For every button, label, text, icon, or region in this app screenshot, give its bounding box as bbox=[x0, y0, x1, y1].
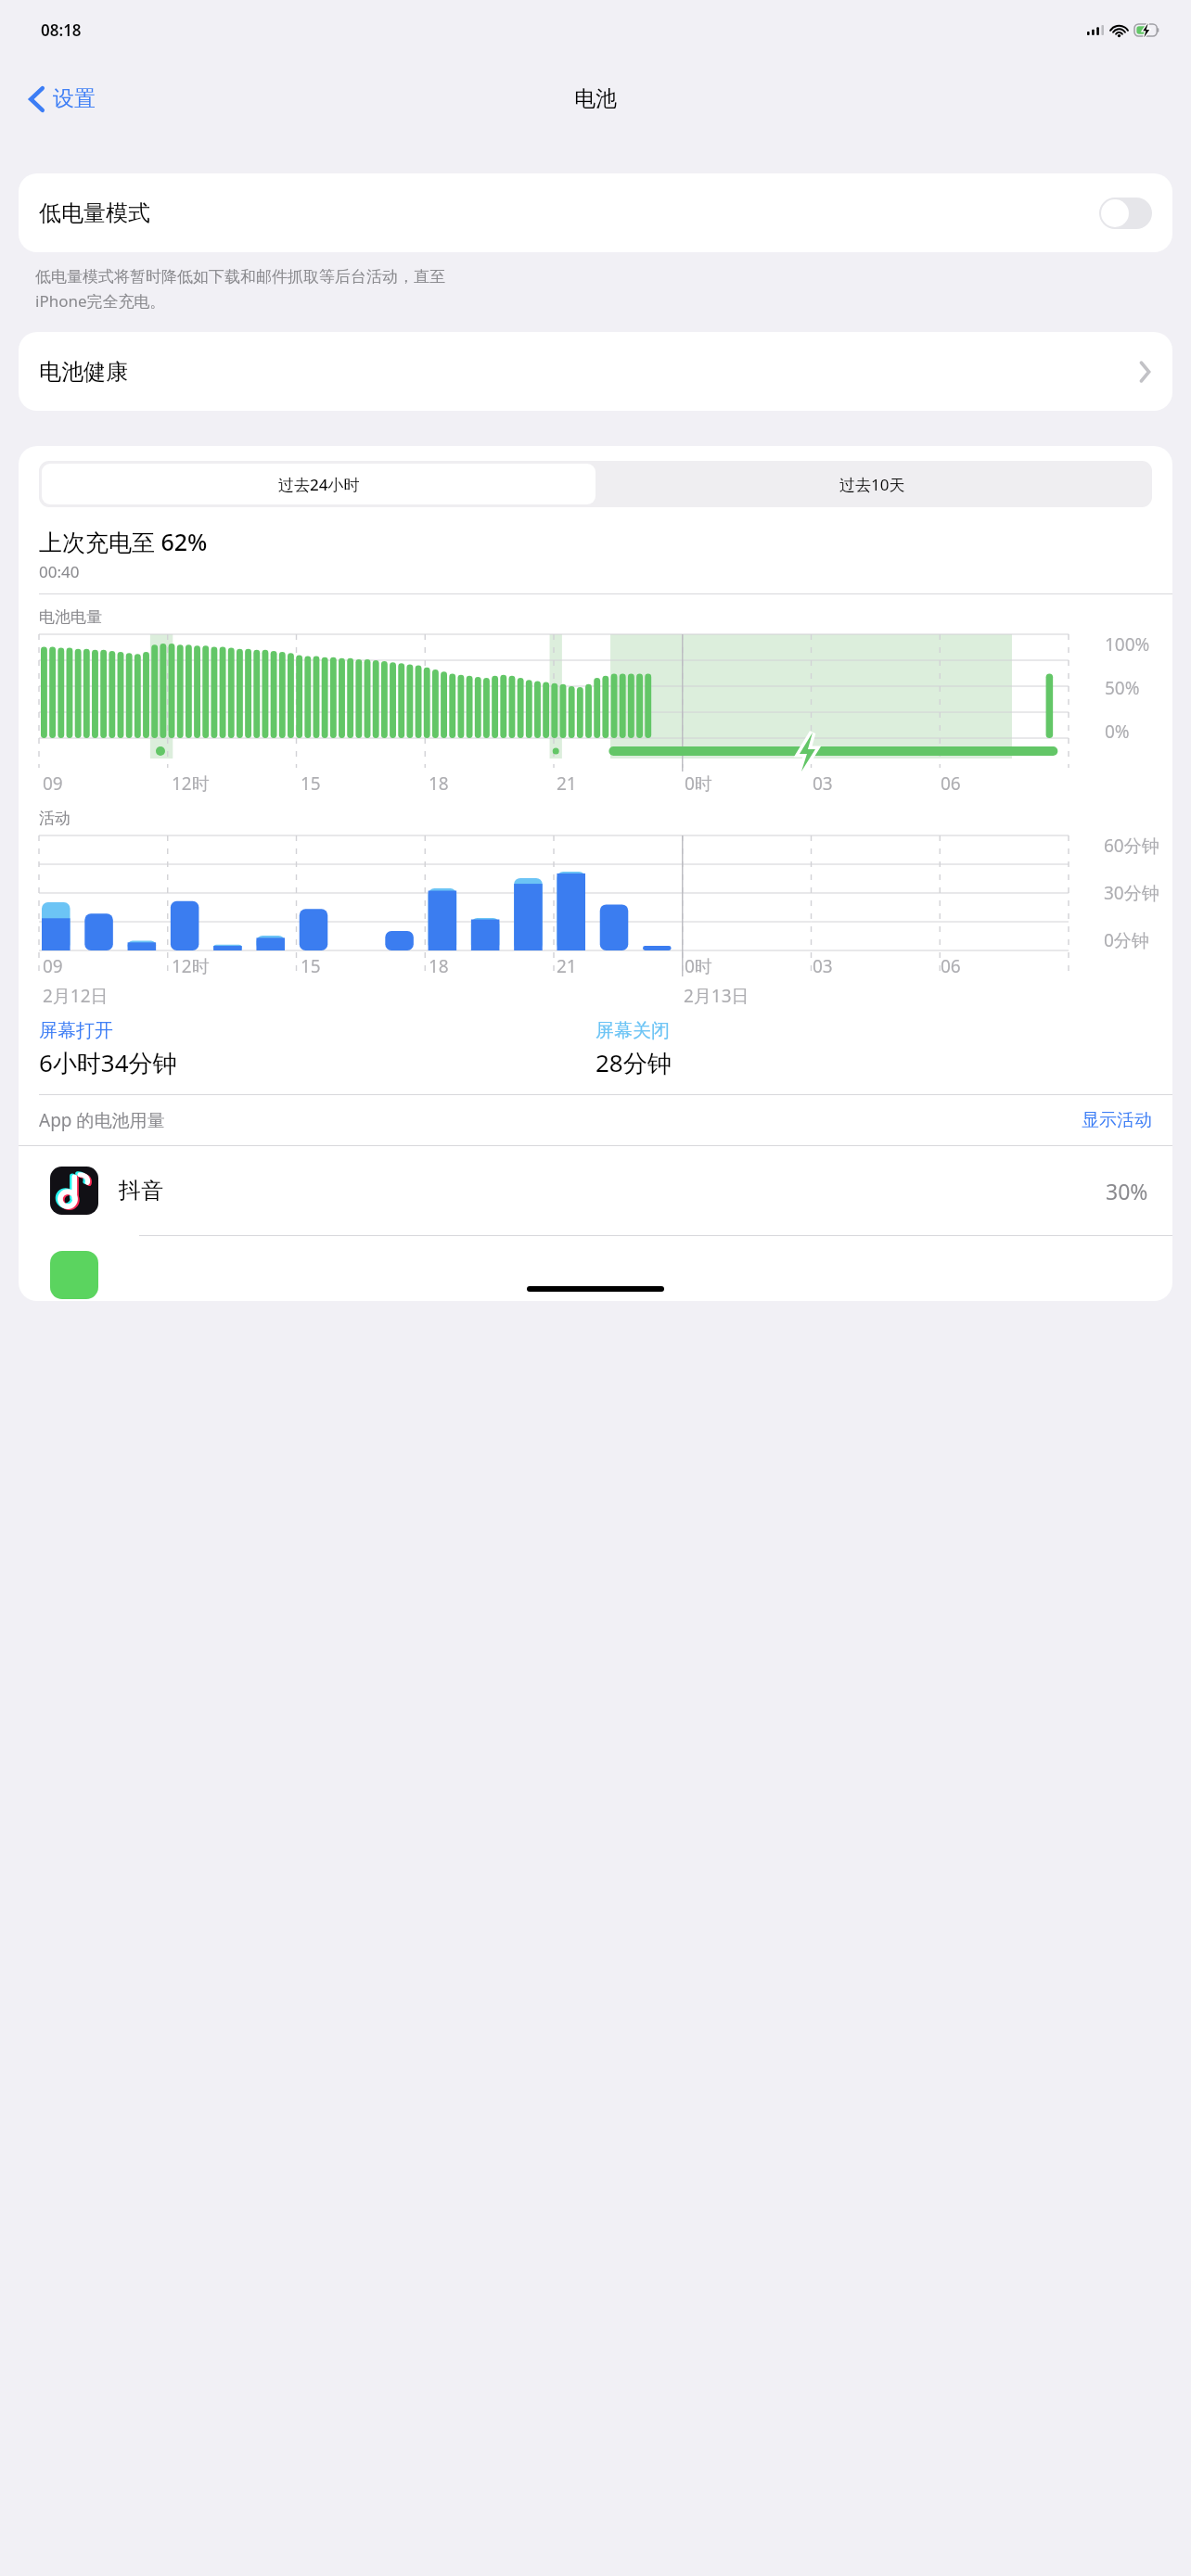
button[interactable]: 显示活动 bbox=[1082, 1109, 1152, 1131]
staticText: 09 bbox=[43, 772, 63, 796]
staticText: 15 bbox=[301, 772, 321, 796]
staticText: 低电量模式将暂时降低如下载和邮件抓取等后台活动，直至 iPhone完全充电。 bbox=[35, 267, 1172, 312]
staticText: 18 bbox=[429, 772, 449, 796]
staticText: 电池 bbox=[574, 85, 617, 112]
button[interactable]: 过去24小时 bbox=[42, 464, 595, 504]
button[interactable]: 电池健康 bbox=[19, 332, 1172, 411]
button[interactable]: 设置 bbox=[22, 80, 103, 118]
staticText: 屏幕关闭 bbox=[595, 1019, 670, 1042]
staticText: 50% bbox=[1105, 676, 1140, 700]
staticText: App 的电池用量 bbox=[39, 1108, 165, 1132]
button[interactable]: Low Power Mode toggle bbox=[1099, 198, 1152, 229]
staticText: 抖音 bbox=[119, 1177, 163, 1205]
staticText: 08:18 bbox=[41, 19, 82, 41]
staticText: 低电量模式 bbox=[39, 199, 150, 227]
staticText: 上次充电至 62% bbox=[39, 526, 208, 557]
staticText: 00:40 bbox=[39, 561, 80, 582]
staticText: 06 bbox=[941, 772, 961, 796]
staticText: 设置 bbox=[53, 85, 96, 112]
button[interactable]: 过去10天 bbox=[595, 464, 1149, 504]
staticText: 12时 bbox=[172, 954, 210, 978]
staticText: 03 bbox=[813, 772, 833, 796]
staticText: 21 bbox=[557, 954, 577, 978]
staticText: 0时 bbox=[685, 772, 712, 796]
button[interactable]: 低电量模式 bbox=[19, 173, 1172, 252]
staticText: 活动 bbox=[39, 809, 70, 828]
staticText: 09 bbox=[43, 954, 63, 978]
staticText: 0时 bbox=[685, 954, 712, 978]
staticText: 2月12日 bbox=[43, 984, 109, 1008]
staticText: 60分钟 bbox=[1104, 834, 1159, 858]
staticText: 过去24小时 bbox=[278, 474, 360, 495]
staticText: 2月13日 bbox=[684, 984, 749, 1008]
staticText: 15 bbox=[301, 954, 321, 978]
staticText: 电池健康 bbox=[39, 358, 128, 386]
staticText: 21 bbox=[557, 772, 577, 796]
staticText: 03 bbox=[813, 954, 833, 978]
button[interactable]: 抖音 bbox=[19, 1146, 1172, 1235]
staticText: 过去10天 bbox=[839, 474, 905, 495]
staticText: 30% bbox=[1106, 1177, 1148, 1205]
staticText: 100% bbox=[1105, 632, 1150, 657]
staticText: 6小时34分钟 bbox=[39, 1046, 177, 1079]
staticText: 18 bbox=[429, 954, 449, 978]
staticText: 0分钟 bbox=[1104, 928, 1149, 952]
staticText: 12时 bbox=[172, 772, 210, 796]
staticText: 06 bbox=[941, 954, 961, 978]
staticText: 显示活动 bbox=[1082, 1109, 1152, 1131]
staticText: 30分钟 bbox=[1104, 881, 1159, 905]
staticText: 0% bbox=[1105, 720, 1130, 744]
staticText: 28分钟 bbox=[595, 1046, 672, 1079]
staticText: 电池电量 bbox=[39, 607, 102, 627]
staticText: 屏幕打开 bbox=[39, 1019, 113, 1042]
